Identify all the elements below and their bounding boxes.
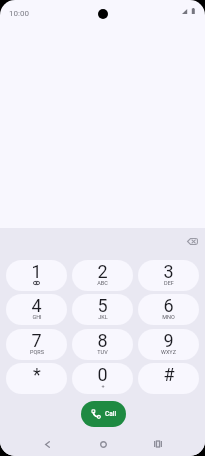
button[interactable]: Home [89,432,117,456]
staticText: ABC [97,280,108,286]
staticText: + [101,383,105,389]
button[interactable]: 7 [6,329,67,360]
button[interactable]: 4 [6,294,67,325]
button[interactable]: 1 [6,260,67,291]
button[interactable]: 5 [72,294,133,325]
staticText: # [163,364,175,385]
staticText: JKL [98,314,108,320]
staticText: GHI [32,314,42,320]
staticText: 8 [97,330,108,351]
staticText: 2 [97,261,108,282]
staticText: 6 [163,295,174,316]
button[interactable]: 2 [72,260,133,291]
button[interactable]: 0 [72,363,133,394]
staticText: 7 [31,330,42,351]
staticText: WXYZ [161,349,176,355]
staticText: 3 [163,261,174,282]
button[interactable]: 9 [138,329,199,360]
staticText: 9 [163,330,174,351]
staticText: 10:00 [9,9,29,18]
staticText: DEF [164,280,174,286]
button[interactable]: Call [81,401,126,427]
staticText: 4 [31,295,42,316]
staticText: TUV [97,349,108,355]
button[interactable]: Recents [144,432,172,456]
staticText: * [33,364,41,385]
staticText: MNO [162,314,175,320]
staticText: 0 [97,364,108,385]
staticText: PQRS [30,349,44,355]
staticText: 1 [31,261,42,282]
staticText: Call [105,410,117,418]
button[interactable]: Backspace [184,233,201,249]
button[interactable]: Back [33,432,61,456]
button[interactable]: # [138,363,199,394]
button[interactable]: * [6,363,67,394]
button[interactable]: 6 [138,294,199,325]
button[interactable]: 8 [72,329,133,360]
button[interactable]: 3 [138,260,199,291]
staticText: 5 [97,295,108,316]
